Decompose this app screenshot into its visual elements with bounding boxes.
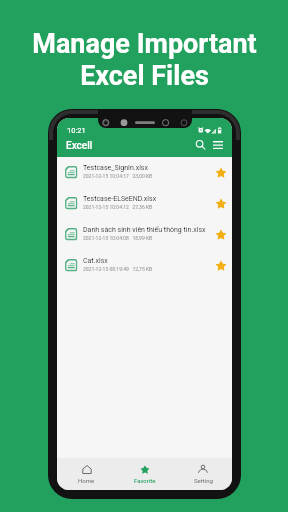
staticText: 10:21 [67,126,86,135]
staticText: 2021-12-15 08:19:49 12,75 KB [83,266,153,272]
staticText: Favorite [134,477,156,484]
button[interactable]: Testcase_SignIn.xlsx [57,157,232,188]
button[interactable]: Favorite [212,165,228,181]
button[interactable]: Menu [209,136,227,154]
staticText: 2021-12-15 10:04:08 18,99 KB [83,235,153,241]
staticText: Excel Files [80,60,209,92]
button[interactable]: Favorite [212,258,228,274]
staticText: Cat.xlsx [83,257,108,265]
button[interactable]: Favorite [116,458,174,490]
button[interactable]: Favorite [212,196,228,212]
staticText: Danh sách sinh viên thiếu thông tin.xlsx [83,226,206,234]
staticText: 2021-12-15 10:04:12 27,36 KB [83,204,153,210]
staticText: Manage Important [32,28,257,60]
button[interactable]: Cat.xlsx [57,250,232,281]
button[interactable]: Home [57,458,116,490]
button[interactable]: Search [191,136,209,154]
button[interactable]: Danh sách sinh viên thiếu thông tin.xlsx [57,219,232,250]
button[interactable]: Testcase-ELSeEND.xlsx [57,188,232,219]
staticText: 2021-12-15 10:04:17 23,00 KB [83,173,153,179]
button[interactable]: Setting [174,458,232,490]
staticText: Testcase-ELSeEND.xlsx [83,195,157,203]
staticText: Home [78,477,95,484]
button[interactable]: Favorite [212,227,228,243]
staticText: Testcase_SignIn.xlsx [83,164,148,172]
staticText: Excell [66,140,93,152]
staticText: Setting [194,477,213,484]
